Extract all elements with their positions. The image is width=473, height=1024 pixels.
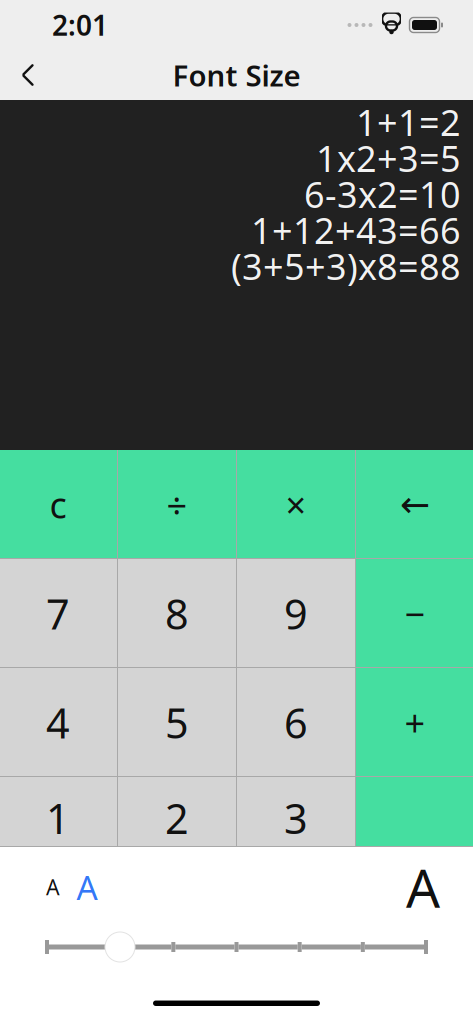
staticText: 4	[46, 695, 70, 750]
staticText: 5	[165, 695, 189, 750]
button[interactable]: 8	[118, 559, 236, 668]
staticText: 1x2+3=5	[316, 134, 461, 182]
staticText: 1+1=2	[356, 98, 461, 146]
button[interactable]: Back	[0, 50, 56, 100]
staticText: ×	[285, 481, 306, 528]
staticText: 6	[284, 695, 308, 750]
staticText: ÷	[166, 481, 187, 528]
button[interactable]: Largest text size	[401, 865, 445, 909]
staticText: +	[404, 699, 425, 746]
button[interactable]: Smallest text size	[36, 865, 70, 909]
button[interactable]: 4	[0, 668, 117, 777]
staticText: 9	[284, 586, 308, 641]
button[interactable]: 5	[118, 668, 236, 777]
button[interactable]: c	[0, 450, 117, 559]
staticText: 7	[46, 586, 70, 641]
button[interactable]: 3	[237, 777, 355, 847]
staticText: A	[76, 865, 97, 909]
button[interactable]: 6	[237, 668, 355, 777]
staticText: 2:01	[52, 6, 108, 44]
button[interactable]: Plus	[356, 668, 473, 777]
button[interactable]: 9	[237, 559, 355, 668]
staticText: 2	[165, 791, 189, 845]
button[interactable]: ×	[237, 450, 355, 559]
button[interactable]: Text size slider	[0, 927, 473, 967]
button[interactable]: 1	[0, 777, 117, 847]
button[interactable]: 2	[118, 777, 236, 847]
button[interactable]: Current text size	[70, 865, 104, 909]
staticText: 3	[284, 791, 308, 845]
staticText: −	[404, 590, 425, 637]
staticText: Font Size	[172, 55, 300, 94]
button[interactable]: ÷	[118, 450, 236, 559]
staticText: c	[49, 481, 66, 528]
staticText: A	[46, 873, 60, 901]
staticText: 1+12+43=66	[251, 206, 461, 254]
button[interactable]: 7	[0, 559, 117, 668]
staticText: A	[406, 852, 440, 922]
staticText: 1	[46, 791, 70, 845]
button[interactable]: Equals	[356, 777, 473, 847]
staticText: ←	[400, 484, 430, 525]
button[interactable]: Minus	[356, 559, 473, 668]
staticText: 6-3x2=10	[304, 170, 461, 218]
staticText: (3+5+3)x8=88	[231, 242, 461, 290]
button[interactable]: Backspace	[356, 450, 473, 559]
staticText: 8	[165, 586, 189, 641]
